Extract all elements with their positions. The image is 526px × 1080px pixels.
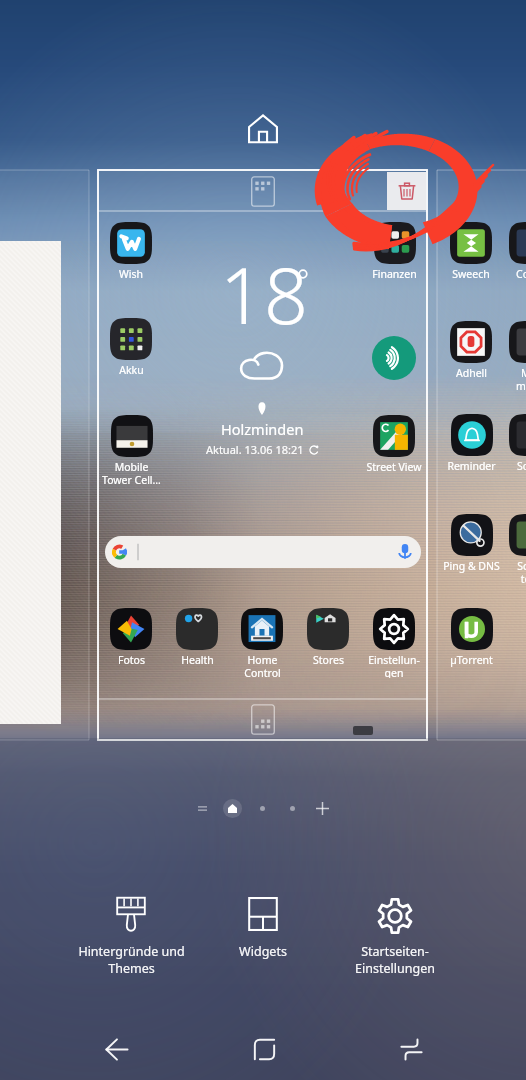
staticText: Con…: [516, 267, 526, 281]
staticText: Adhell: [456, 366, 487, 380]
button[interactable]: Finanzen: [361, 222, 427, 292]
staticText: Hintergründe und Themes: [78, 943, 185, 977]
button[interactable]: Stores: [295, 608, 361, 678]
button[interactable]: Apps grid: [251, 704, 275, 735]
button[interactable]: Con…: [497, 222, 526, 292]
staticText: M… mat…: [516, 366, 526, 391]
button[interactable]: Widgets: [197, 890, 329, 970]
staticText: Mobile Tower Cell…: [102, 460, 161, 485]
button[interactable]: Home Control: [229, 608, 295, 678]
staticText: Reminder: [447, 459, 496, 473]
staticText: Sou…: [517, 459, 526, 473]
staticText: Widgets: [239, 943, 287, 960]
button[interactable]: Mobile Tower Cell…: [98, 415, 164, 485]
staticText: 18: [220, 242, 308, 347]
staticText: Sweech: [452, 267, 490, 281]
staticText: Stores: [313, 653, 344, 667]
button[interactable]: Page 2: [247, 793, 277, 823]
button[interactable]: Street View: [361, 415, 427, 485]
button[interactable]: Akku: [98, 318, 164, 388]
button[interactable]: M… mat…: [497, 321, 526, 391]
staticText: Street View: [366, 460, 422, 474]
staticText: Aktual. 13.06 18:21: [206, 442, 304, 457]
button[interactable]: Recent apps: [379, 1017, 443, 1080]
button[interactable]: Google search: [105, 536, 421, 568]
staticText: µTorrent: [450, 653, 493, 667]
button[interactable]: Page 3: [277, 793, 307, 823]
button[interactable]: Fotos: [98, 608, 164, 678]
button[interactable]: Apps grid: [251, 176, 275, 207]
button[interactable]: Adhell: [438, 321, 504, 391]
button[interactable]: µTorrent: [438, 608, 504, 678]
button[interactable]: Weather widget: [162, 250, 362, 465]
button[interactable]: Remove page: [387, 172, 426, 210]
button[interactable]: Health: [164, 608, 230, 678]
staticText: Home Control: [244, 653, 281, 678]
button[interactable]: Page list: [187, 793, 217, 823]
button[interactable]: Sweech: [438, 222, 504, 292]
button[interactable]: Main home screen: [246, 112, 280, 146]
button[interactable]: Ping & DNS: [438, 514, 504, 584]
staticText: Health: [181, 653, 214, 667]
button[interactable]: Startseiten- Einstellungen: [329, 890, 461, 970]
button[interactable]: Sou…: [497, 414, 526, 484]
button[interactable]: Sch… to…: [497, 514, 526, 584]
button[interactable]: Hintergründe und Themes: [65, 890, 197, 970]
button[interactable]: Back: [84, 1017, 148, 1080]
staticText: Holzminden: [221, 419, 304, 439]
staticText: Akku: [119, 363, 144, 377]
staticText: Wish: [119, 267, 143, 281]
button[interactable]: Einstellun- gen: [361, 608, 427, 678]
button[interactable]: NFC: [372, 336, 416, 380]
staticText: Startseiten- Einstellungen: [355, 943, 435, 977]
staticText: Fotos: [118, 653, 145, 667]
button[interactable]: Home page: [217, 793, 247, 823]
button[interactable]: Reminder: [438, 414, 504, 484]
staticText: Finanzen: [372, 267, 417, 281]
staticText: Ping & DNS: [443, 559, 500, 573]
button[interactable]: Wish: [98, 222, 164, 292]
staticText: Einstellun- gen: [368, 653, 420, 678]
button[interactable]: Add page: [307, 793, 337, 823]
button[interactable]: Home: [232, 1017, 296, 1080]
staticText: Sch… to…: [517, 559, 526, 584]
